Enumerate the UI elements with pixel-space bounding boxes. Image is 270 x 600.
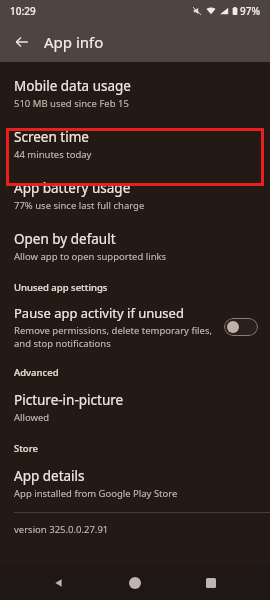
button[interactable]: Recent apps xyxy=(194,566,228,600)
staticText: App battery usage xyxy=(14,179,131,197)
staticText: Mobile data usage xyxy=(14,77,131,95)
staticText: 10:29 xyxy=(10,4,36,18)
staticText: Store xyxy=(14,442,38,455)
staticText: and stop notifications xyxy=(14,337,111,350)
staticText: Allowed xyxy=(14,411,50,424)
staticText: App installed from Google Play Store xyxy=(14,487,178,500)
button[interactable]: App details xyxy=(0,458,270,509)
staticText: App info xyxy=(44,32,104,52)
staticText: App details xyxy=(14,467,85,485)
staticText: Pause app activity if unused xyxy=(14,304,184,322)
button[interactable]: App battery usage xyxy=(0,170,270,221)
button[interactable]: Screen time xyxy=(0,119,270,170)
button[interactable]: Open by default xyxy=(0,221,270,272)
button[interactable]: Home xyxy=(118,566,152,600)
staticText: Remove permissions, delete temporary fil… xyxy=(14,324,213,337)
staticText: Advanced xyxy=(14,366,59,379)
button[interactable]: Mobile data usage xyxy=(0,68,270,119)
staticText: Unused app settings xyxy=(14,281,108,294)
staticText: version 325.0.0.27.91 xyxy=(14,523,109,536)
button[interactable]: Pause app activity if unused xyxy=(0,297,270,357)
button[interactable]: Picture-in-picture xyxy=(0,382,270,433)
staticText: 510 MB used since Feb 15 xyxy=(14,97,129,110)
staticText: Open by default xyxy=(14,230,116,248)
button[interactable]: Back xyxy=(6,26,38,58)
staticText: Allow app to open supported links xyxy=(14,250,167,263)
button[interactable]: Pause app activity if unused toggle xyxy=(224,318,258,336)
staticText: 97% xyxy=(240,4,260,18)
staticText: Screen time xyxy=(14,128,89,146)
staticText: 44 minutes today xyxy=(14,148,92,161)
staticText: Picture-in-picture xyxy=(14,391,124,409)
button[interactable]: Back xyxy=(42,566,76,600)
staticText: 77% use since last full charge xyxy=(14,199,145,212)
